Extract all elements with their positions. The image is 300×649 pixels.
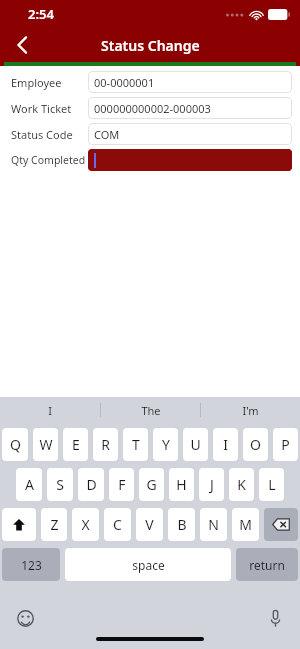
staticText: I bbox=[48, 403, 52, 418]
button[interactable]: E bbox=[63, 428, 88, 461]
staticText: J bbox=[210, 475, 214, 494]
button[interactable]: Dictation bbox=[260, 603, 290, 633]
staticText: K bbox=[237, 475, 246, 494]
button[interactable]: Emoji bbox=[10, 603, 40, 633]
staticText: 00-0000001 bbox=[94, 75, 155, 90]
button[interactable]: D bbox=[78, 468, 104, 501]
staticText: 000000000002-000003 bbox=[94, 101, 211, 116]
button[interactable]: J bbox=[199, 468, 224, 501]
button[interactable]: W bbox=[33, 428, 58, 461]
button[interactable]: Q bbox=[2, 428, 28, 461]
staticText: F bbox=[118, 475, 126, 494]
button[interactable]: C bbox=[104, 508, 131, 541]
button[interactable]: return bbox=[236, 548, 298, 581]
button[interactable]: O bbox=[243, 428, 268, 461]
staticText: C bbox=[113, 515, 122, 534]
staticText: R bbox=[101, 435, 110, 454]
button[interactable]: H bbox=[169, 468, 194, 501]
staticText: Status Code bbox=[11, 127, 73, 142]
button[interactable]: T bbox=[123, 428, 148, 461]
staticText: T bbox=[132, 435, 140, 454]
staticText: U bbox=[190, 435, 201, 454]
staticText: I bbox=[223, 435, 228, 454]
button[interactable]: 123 bbox=[2, 548, 60, 581]
button[interactable]: Qty Completed bbox=[0, 147, 300, 173]
button[interactable]: Y bbox=[153, 428, 178, 461]
button[interactable]: B bbox=[168, 508, 195, 541]
button[interactable]: F bbox=[109, 468, 134, 501]
staticText: V bbox=[145, 515, 154, 534]
staticText: O bbox=[250, 435, 261, 454]
staticText: Q bbox=[10, 435, 21, 454]
button[interactable]: Z bbox=[41, 508, 67, 541]
staticText: Y bbox=[162, 435, 170, 454]
button[interactable]: Shift bbox=[2, 508, 36, 541]
staticText: 123 bbox=[21, 557, 42, 573]
button[interactable]: Employee bbox=[0, 69, 300, 95]
button[interactable]: The bbox=[101, 397, 200, 423]
button[interactable]: L bbox=[259, 468, 284, 501]
button[interactable]: G bbox=[139, 468, 164, 501]
staticText: return bbox=[249, 557, 285, 573]
staticText: G bbox=[146, 475, 157, 494]
button[interactable]: A bbox=[16, 468, 42, 501]
button[interactable]: I bbox=[213, 428, 238, 461]
button[interactable]: R bbox=[93, 428, 118, 461]
staticText: The bbox=[141, 403, 161, 418]
staticText: S bbox=[56, 475, 64, 494]
button[interactable]: Work Ticket bbox=[0, 95, 300, 121]
button[interactable]: I bbox=[0, 397, 100, 423]
button[interactable]: space bbox=[65, 548, 231, 581]
staticText: COM bbox=[94, 127, 120, 142]
staticText: I'm bbox=[242, 403, 259, 418]
button[interactable]: Back bbox=[0, 28, 44, 62]
staticText: Status Change bbox=[101, 36, 200, 55]
staticText: P bbox=[281, 435, 290, 454]
staticText: W bbox=[39, 435, 53, 454]
button[interactable]: P bbox=[273, 428, 298, 461]
button[interactable]: I'm bbox=[201, 397, 300, 423]
button[interactable]: M bbox=[232, 508, 259, 541]
staticText: L bbox=[268, 475, 276, 494]
button[interactable]: U bbox=[183, 428, 208, 461]
staticText: Z bbox=[50, 515, 59, 534]
button[interactable]: S bbox=[47, 468, 73, 501]
button[interactable]: N bbox=[200, 508, 227, 541]
staticText: X bbox=[81, 515, 90, 534]
staticText: Work Ticket bbox=[11, 101, 72, 116]
button[interactable]: Backspace bbox=[264, 508, 298, 541]
staticText: Employee bbox=[11, 75, 62, 90]
staticText: space bbox=[132, 557, 165, 573]
staticText: Qty Completed bbox=[11, 153, 86, 167]
button[interactable]: Status Code bbox=[0, 121, 300, 147]
staticText: E bbox=[72, 435, 80, 454]
staticText: 2:54 bbox=[28, 5, 54, 23]
staticText: N bbox=[208, 515, 219, 534]
staticText: H bbox=[176, 475, 187, 494]
button[interactable]: K bbox=[229, 468, 254, 501]
button[interactable]: X bbox=[72, 508, 99, 541]
staticText: D bbox=[86, 475, 97, 494]
staticText: M bbox=[239, 515, 252, 534]
staticText: B bbox=[177, 515, 187, 534]
button[interactable]: V bbox=[136, 508, 163, 541]
staticText: A bbox=[25, 475, 34, 494]
